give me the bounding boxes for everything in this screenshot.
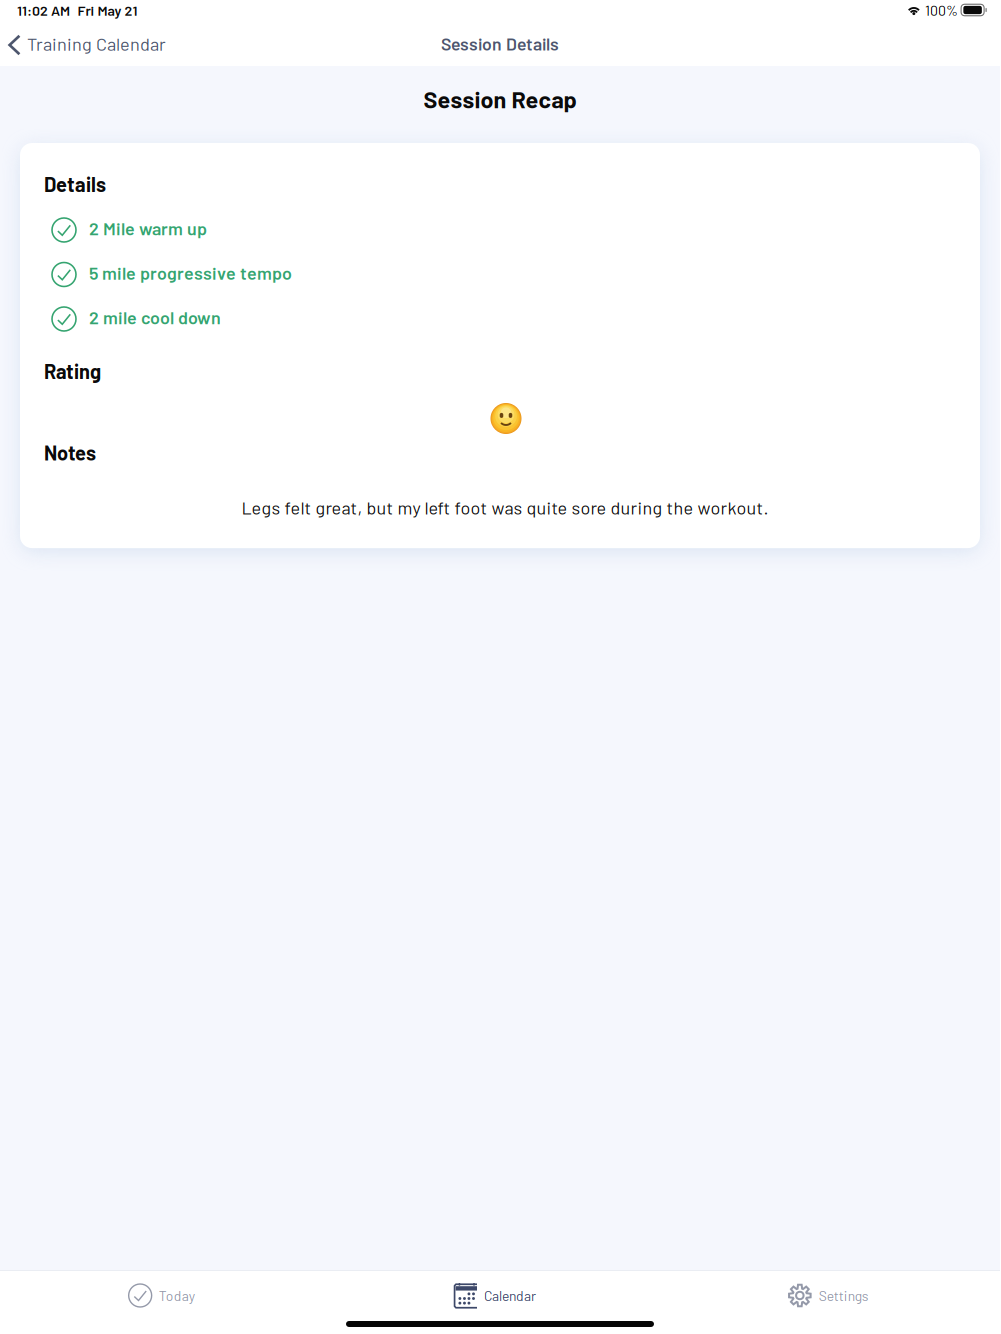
staticText: 2 mile cool down — [89, 306, 221, 328]
staticText: 11:02 AM — [17, 1, 70, 18]
staticText: Training Calendar — [27, 33, 166, 54]
staticText: Details — [44, 172, 106, 196]
staticText: Today — [159, 1287, 195, 1304]
staticText: Notes — [44, 440, 96, 464]
staticText: 5 mile progressive tempo — [89, 262, 292, 283]
button[interactable]: Settings — [667, 1271, 1000, 1315]
staticText: Fri May 21 — [77, 1, 137, 18]
staticText: 2 Mile warm up — [89, 217, 207, 239]
staticText: Settings — [819, 1287, 869, 1304]
button[interactable]: Training Calendar — [0, 27, 176, 63]
staticText: Session Details — [441, 33, 559, 54]
staticText: Rating — [44, 359, 101, 383]
staticText: Calendar — [484, 1287, 536, 1304]
staticText: 100% — [925, 1, 958, 18]
staticText: Session Recap — [423, 85, 576, 113]
button[interactable]: Calendar — [333, 1271, 667, 1315]
staticText: Legs felt great, but my left foot was qu… — [241, 496, 768, 518]
button[interactable]: Today — [0, 1271, 333, 1315]
